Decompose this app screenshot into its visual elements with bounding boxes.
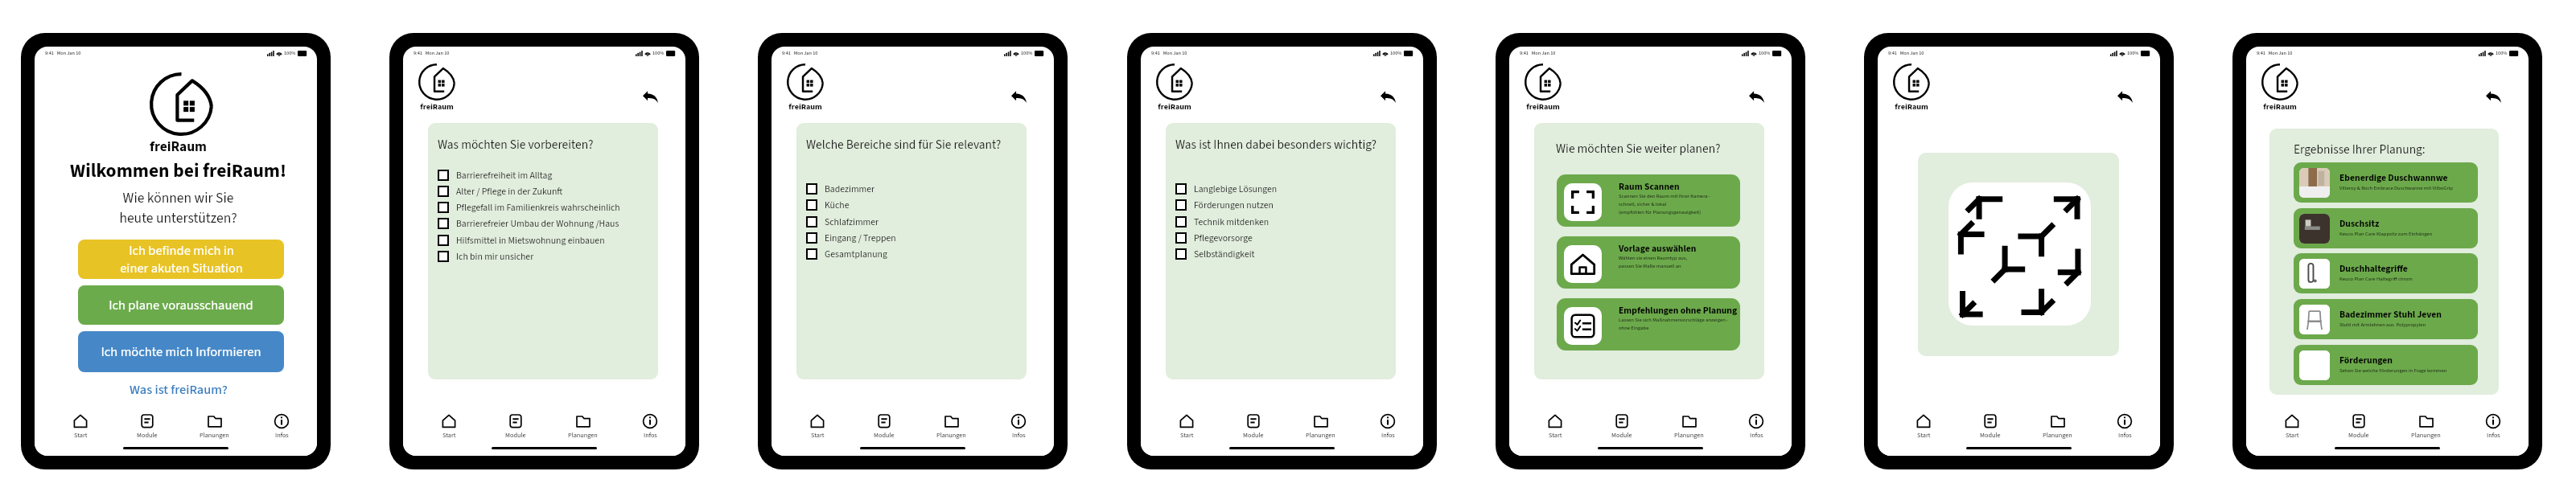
button[interactable]: Planungen — [2039, 413, 2076, 441]
staticText: Module — [505, 431, 526, 441]
staticText: Ich bin mir unsicher — [456, 250, 534, 264]
button[interactable]: Module — [1607, 413, 1636, 441]
button[interactable]: Start — [68, 413, 93, 441]
button[interactable]: Pflegevorsorge — [1175, 230, 1376, 246]
button[interactable]: Zurück — [639, 87, 662, 107]
staticText: freiRaum — [1884, 101, 1939, 113]
button[interactable]: Planungen — [1302, 413, 1339, 441]
staticText: Duschhaltegriffe — [2339, 262, 2408, 276]
button[interactable]: Infos — [270, 413, 294, 441]
button[interactable]: Module — [133, 413, 162, 441]
button[interactable]: Förderungen nutzen — [1175, 197, 1376, 213]
button[interactable]: Selbständigkeit — [1175, 246, 1376, 262]
button[interactable]: Module — [1976, 413, 2005, 441]
button[interactable]: Infos — [1744, 413, 1768, 441]
button[interactable]: Infos — [2113, 413, 2137, 441]
button[interactable]: Förderungen — [2294, 345, 2478, 385]
button[interactable]: Ich plane vorausschauend — [78, 285, 284, 325]
button[interactable]: Start — [1175, 413, 1199, 441]
button[interactable]: Vorlage auswählen — [1557, 236, 1740, 289]
staticText: Ich befinde mich in einer akuten Situati… — [120, 241, 243, 277]
button[interactable]: Infos — [1376, 413, 1400, 441]
staticText: Start — [811, 431, 825, 441]
staticText: Keuco Plan Care Haltegriff chrom — [2339, 275, 2413, 282]
button[interactable]: Module — [870, 413, 899, 441]
button[interactable]: Planungen — [195, 413, 233, 441]
button[interactable]: Zurück — [2113, 87, 2137, 107]
button[interactable]: Ebenerdige Duschwannwe — [2294, 162, 2478, 203]
staticText: Sehen Sie welche Förderungen in Frage ko… — [2339, 367, 2447, 374]
staticText: Ebenerdige Duschwannwe — [2339, 171, 2448, 185]
staticText: Eingang / Treppen — [825, 232, 896, 245]
staticText: Wie können wir Sie heute unterstützen? — [37, 188, 317, 228]
button[interactable]: Start — [437, 413, 461, 441]
staticText: Barrierefreier Umbau der Wohnung /Haus — [456, 217, 619, 231]
button[interactable]: Zurück — [1007, 87, 1031, 107]
button[interactable]: Infos — [638, 413, 662, 441]
button[interactable]: Start — [2280, 413, 2304, 441]
button[interactable]: Start — [805, 413, 829, 441]
button[interactable]: Barrierefreier Umbau der Wohnung /Haus — [438, 215, 639, 232]
staticText: Wählen sie einen Raumtyp aus, passen Sie… — [1619, 254, 1688, 270]
staticText: Gesamtplanung — [825, 248, 887, 261]
staticText: Raum Scannen — [1619, 180, 1680, 194]
button[interactable]: Module — [2344, 413, 2373, 441]
staticText: freiRaum — [2253, 101, 2307, 113]
staticText: Planungen — [2411, 431, 2441, 441]
staticText: Förderungen — [2339, 354, 2393, 367]
button[interactable]: Zurück — [1376, 87, 1400, 107]
button[interactable]: Badezimmer Stuhl Jeven — [2294, 299, 2478, 339]
button[interactable]: Start — [1543, 413, 1567, 441]
button[interactable]: Ich bin mir unsicher — [438, 248, 639, 264]
button[interactable]: Planungen — [564, 413, 602, 441]
staticText: freiRaum — [37, 137, 317, 157]
staticText: Wie möchten Sie weiter planen? — [1556, 140, 1721, 158]
button[interactable]: Planungen — [2407, 413, 2445, 441]
button[interactable]: Infos — [1006, 413, 1031, 441]
button[interactable]: Duschsitz — [2294, 208, 2478, 248]
button[interactable]: Ich befinde mich in einer akuten Situati… — [78, 240, 284, 279]
button[interactable]: Start — [1911, 413, 1936, 441]
button[interactable]: Technik mitdenken — [1175, 214, 1376, 230]
staticText: Selbständigkeit — [1194, 248, 1255, 261]
button[interactable]: Zurück — [2482, 87, 2505, 107]
staticText: Lassen Sie sich Maßnahmenvorschläge anze… — [1619, 316, 1729, 332]
staticText: Villeroy & Boch Embrace Duschwanne mit V… — [2339, 184, 2454, 191]
staticText: Start — [1180, 431, 1194, 441]
button[interactable]: Module — [501, 413, 530, 441]
button[interactable]: Schlafzimmer — [806, 214, 1007, 230]
button[interactable]: Barrierefreiheit im Alltag — [438, 167, 639, 183]
staticText: Start — [442, 431, 456, 441]
button[interactable]: Hilfsmittel in Mietswohnung einbauen — [438, 232, 639, 248]
button[interactable]: Langlebige Lösungen — [1175, 181, 1376, 197]
button[interactable]: Pflegefall im Familienkreis wahrscheinli… — [438, 199, 639, 215]
button[interactable]: Planungen — [1670, 413, 1708, 441]
staticText: Module — [137, 431, 158, 441]
staticText: Pflegefall im Familienkreis wahrscheinli… — [456, 201, 620, 215]
staticText: 100% — [1759, 50, 1771, 57]
button[interactable]: Raum Scannen — [1557, 174, 1740, 227]
button[interactable]: Empfehlungen ohne Planung — [1557, 298, 1740, 350]
staticText: Technik mitdenken — [1194, 215, 1269, 229]
button[interactable]: Küche — [806, 197, 1007, 213]
button[interactable]: Ich möchte mich Informieren — [78, 331, 284, 372]
staticText: Infos — [275, 431, 289, 441]
button[interactable]: Infos — [2481, 413, 2505, 441]
button[interactable]: Eingang / Treppen — [806, 230, 1007, 246]
button[interactable]: Duschhaltegriffe — [2294, 253, 2478, 293]
button[interactable]: Module — [1239, 413, 1268, 441]
button[interactable]: Gesamtplanung — [806, 246, 1007, 262]
button[interactable]: Badezimmer — [806, 181, 1007, 197]
staticText: Planungen — [200, 431, 229, 441]
staticText: Küche — [825, 199, 850, 212]
button[interactable]: Alter / Pflege in der Zukunft — [438, 183, 639, 199]
button[interactable]: Was ist freiRaum? — [121, 378, 236, 401]
staticText: Keuco Plan Care Klappsitz zum Einhängen — [2339, 230, 2433, 237]
staticText: Planungen — [1674, 431, 1704, 441]
staticText: Start — [74, 431, 88, 441]
staticText: 9:41 Mon Jan 10 — [1520, 50, 1556, 57]
staticText: Planungen — [936, 431, 966, 441]
staticText: Stuhl mit Armlehnen aus Polypropylen — [2339, 321, 2426, 328]
button[interactable]: Planungen — [932, 413, 970, 441]
button[interactable]: Zurück — [1745, 87, 1768, 107]
